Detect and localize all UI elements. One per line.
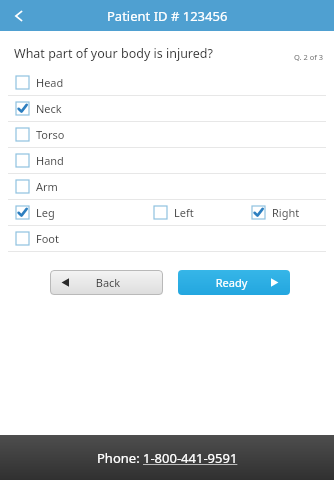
button[interactable]: Hand (16, 153, 64, 168)
button[interactable]: Ready (178, 270, 290, 295)
staticText: Right (272, 205, 300, 220)
staticText: Back (71, 275, 145, 290)
button[interactable]: Leg (16, 205, 55, 220)
button[interactable]: Arm (16, 179, 58, 194)
button[interactable]: Foot (16, 231, 59, 246)
staticText: Q. 2 of 3 (294, 52, 324, 62)
staticText: What part of your body is injured? (14, 45, 294, 62)
staticText: Patient ID # 123456 (107, 7, 228, 25)
button[interactable]: Back (0, 0, 38, 31)
button[interactable]: Back (50, 270, 163, 295)
staticText: Torso (36, 127, 65, 142)
staticText: Left (174, 205, 194, 220)
button[interactable]: Right (252, 205, 300, 220)
staticText: Ready (194, 275, 269, 290)
staticText: Hand (36, 153, 64, 168)
button[interactable]: Left (154, 205, 194, 220)
staticText: Arm (36, 179, 58, 194)
button[interactable]: Neck (16, 101, 62, 116)
button[interactable]: Torso (16, 127, 65, 142)
staticText: 1-800-441-9591 (143, 449, 238, 467)
button[interactable]: Head (16, 75, 64, 90)
staticText: Phone: (97, 449, 143, 467)
staticText: Leg (36, 205, 55, 220)
staticText: Head (36, 75, 64, 90)
button[interactable]: Phone: (0, 435, 334, 480)
staticText: Neck (36, 101, 62, 116)
staticText: Foot (36, 231, 59, 246)
